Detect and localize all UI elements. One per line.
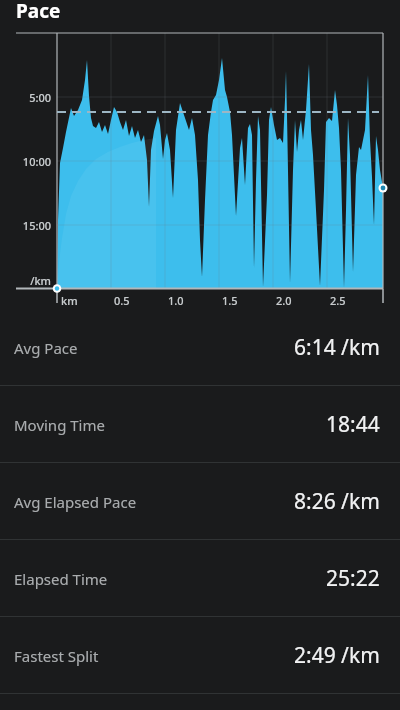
staticText: 5:00 (7, 90, 51, 105)
staticText: 0.5 (114, 293, 130, 308)
staticText: Elapsed Time (14, 569, 108, 589)
button[interactable]: Elapsed Time (0, 540, 400, 617)
staticText: 25:22 (326, 564, 380, 593)
staticText: km (61, 293, 78, 308)
staticText: 2.0 (276, 293, 292, 308)
staticText: 2:49 /km (294, 641, 380, 670)
staticText: Pace (16, 0, 61, 24)
staticText: 18:44 (326, 410, 380, 439)
button[interactable]: Fastest Split (0, 617, 400, 694)
staticText: Avg Elapsed Pace (14, 492, 137, 512)
button[interactable]: Moving Time (0, 386, 400, 463)
staticText: Fastest Split (14, 646, 99, 666)
staticText: 15:00 (7, 218, 51, 233)
staticText: 2.5 (330, 293, 346, 308)
button[interactable]: Avg Elapsed Pace (0, 463, 400, 540)
staticText: 1.0 (168, 293, 184, 308)
staticText: 1.5 (222, 293, 238, 308)
staticText: 6:14 /km (294, 333, 380, 362)
staticText: 8:26 /km (294, 487, 380, 516)
staticText: 10:00 (7, 154, 51, 169)
staticText: Avg Pace (14, 338, 78, 358)
button[interactable]: Avg Pace (0, 309, 400, 386)
staticText: /km (7, 273, 51, 288)
staticText: Moving Time (14, 415, 105, 435)
